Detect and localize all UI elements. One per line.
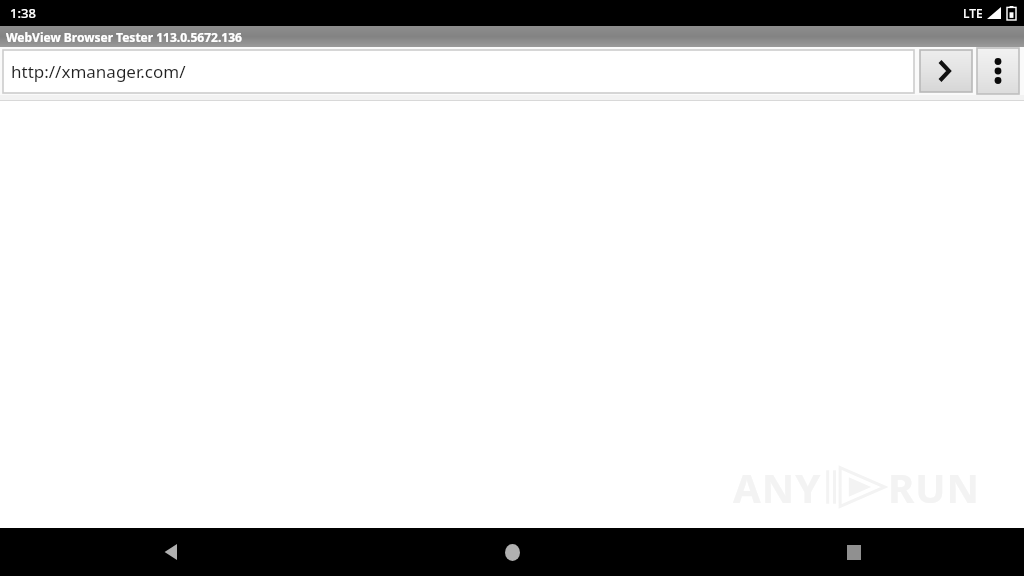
staticText: LTE xyxy=(963,5,983,21)
staticText: RUN xyxy=(888,460,980,514)
staticText: ANY xyxy=(733,460,822,514)
button[interactable]: Recent apps xyxy=(683,528,1024,576)
button[interactable]: Home xyxy=(342,528,683,576)
button[interactable]: http://xmanager.com/ xyxy=(3,50,914,93)
button[interactable]: More options xyxy=(977,48,1019,94)
staticText: 1:38 xyxy=(10,4,36,22)
staticText: WebView Browser Tester 113.0.5672.136 xyxy=(6,29,242,45)
button[interactable]: Back xyxy=(0,528,342,576)
staticText: http://xmanager.com/ xyxy=(11,60,186,83)
button[interactable]: Go xyxy=(920,50,972,92)
